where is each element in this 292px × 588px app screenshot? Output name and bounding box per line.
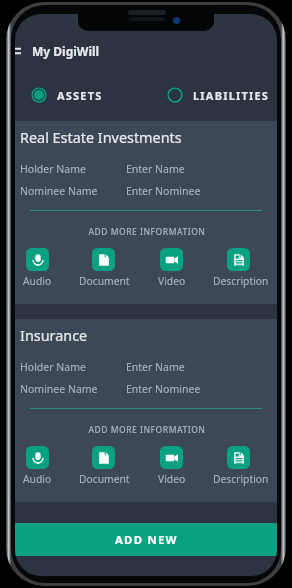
staticText: Insurance [20,326,88,346]
staticText: My DigiWill [32,43,100,59]
staticText: Description [213,274,269,288]
staticText: LIABILITIES [193,88,270,103]
button[interactable]: LIABILITIES [167,87,270,103]
button[interactable]: Audio [23,248,52,288]
staticText: Enter Nominee [126,382,201,396]
button[interactable]: ADD NEW [15,523,277,556]
staticText: ADD MORE INFORMATION [16,424,277,436]
staticText: ADD MORE INFORMATION [16,226,277,238]
button[interactable]: Description [213,248,269,288]
button[interactable]: Document [79,446,130,486]
staticText: Audio [23,274,52,288]
staticText: Document [79,274,130,288]
staticText: Description [213,472,269,486]
staticText: Document [79,472,130,486]
button[interactable]: Description [213,446,269,486]
button[interactable]: Video [158,446,186,486]
button[interactable]: Audio [23,446,52,486]
staticText: ADD NEW [115,532,178,547]
staticText: Enter Name [126,360,185,374]
button[interactable]: ASSETS [31,87,103,103]
staticText: ASSETS [57,88,103,103]
button[interactable]: Document [79,248,130,288]
staticText: Audio [23,472,52,486]
staticText: Video [158,472,186,486]
staticText: Holder Name [20,360,86,374]
staticText: Video [158,274,186,288]
staticText: Nominee Name [20,184,98,198]
button[interactable]: Menu [15,43,21,59]
staticText: Enter Nominee [126,184,201,198]
staticText: Real Estate Investments [20,128,182,148]
staticText: Nominee Name [20,382,98,396]
button[interactable]: Video [158,248,186,288]
staticText: Holder Name [20,162,86,176]
staticText: Enter Name [126,162,185,176]
